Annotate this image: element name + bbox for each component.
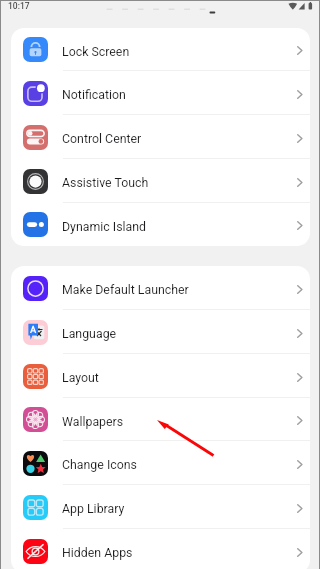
button[interactable]: Notification <box>11 71 310 115</box>
staticText: Lock Screen <box>62 45 130 59</box>
button[interactable]: Control Center <box>11 115 310 159</box>
button[interactable]: Dynamic Island <box>11 203 310 246</box>
button[interactable]: Hidden Apps <box>11 529 310 569</box>
button[interactable]: Make Default Launcher <box>11 266 310 310</box>
staticText: App Library <box>62 502 125 516</box>
staticText: 10:17 <box>8 1 30 11</box>
staticText: Language <box>62 327 117 341</box>
button[interactable]: App Library <box>11 485 310 529</box>
staticText: Control Center <box>62 132 142 146</box>
staticText: Dynamic Island <box>62 220 147 234</box>
staticText: Wallpapers <box>62 415 124 429</box>
button[interactable]: Wallpapers <box>11 398 310 441</box>
staticText: Make Default Launcher <box>62 283 189 297</box>
staticText: Notification <box>62 88 126 102</box>
staticText: Change Icons <box>62 458 137 472</box>
button[interactable]: Lock Screen <box>11 28 310 71</box>
button[interactable]: Change Icons <box>11 441 310 485</box>
staticText: Hidden Apps <box>62 546 133 560</box>
staticText: Layout <box>62 371 99 385</box>
button[interactable]: Assistive Touch <box>11 159 310 203</box>
button[interactable]: Language <box>11 310 310 354</box>
button[interactable]: Layout <box>11 354 310 398</box>
staticText: Assistive Touch <box>62 176 149 190</box>
